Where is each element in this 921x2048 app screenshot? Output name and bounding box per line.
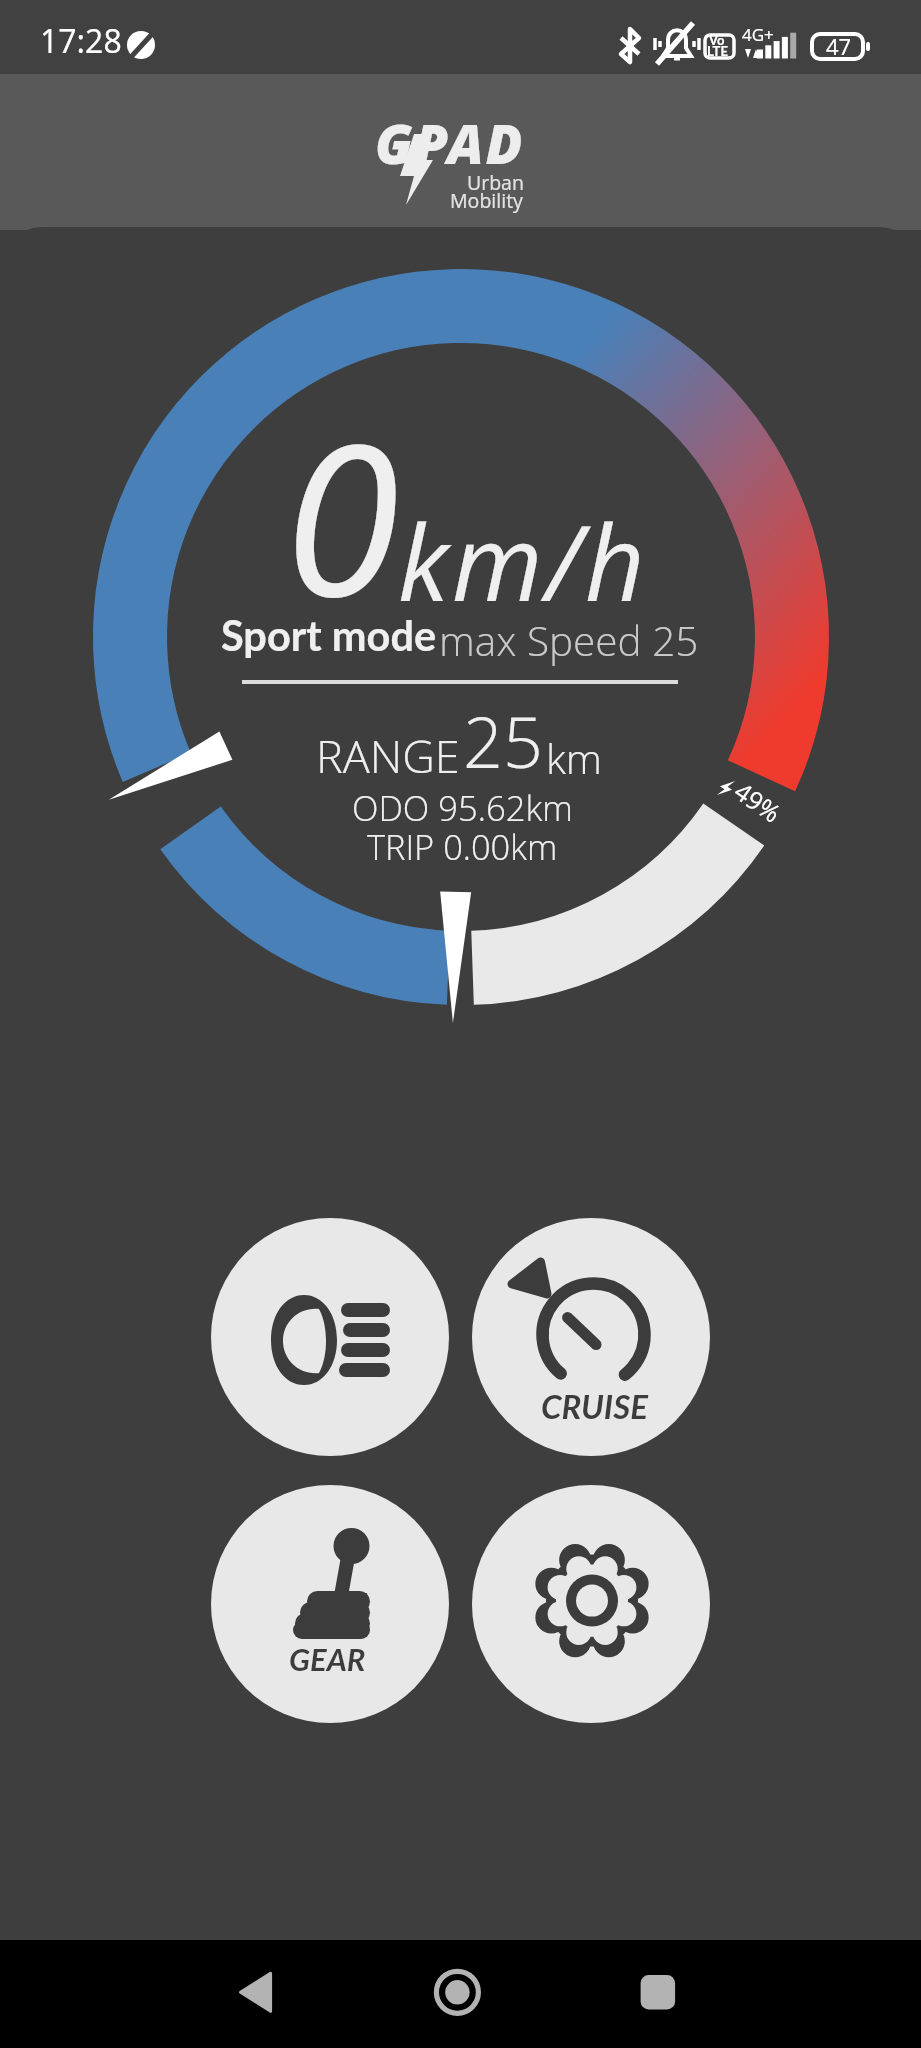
staticText: 25 (463, 693, 543, 788)
button[interactable]: Cruise control (472, 1218, 710, 1456)
staticText: RANGE (316, 725, 460, 786)
staticText: Vo (709, 32, 725, 48)
staticText: TRIP 0.00km (367, 823, 558, 870)
staticText: Mobility (450, 187, 523, 214)
staticText: CRUISE (541, 1386, 648, 1426)
button[interactable]: Settings (472, 1485, 710, 1723)
staticText: GPAD (375, 106, 525, 180)
staticText: 0 (284, 373, 400, 658)
staticText: Sport mode (221, 610, 437, 660)
staticText: 4G+ (742, 23, 774, 46)
staticText: Urban (467, 169, 524, 196)
staticText: 17:28 (40, 19, 122, 63)
staticText: km/h (398, 490, 648, 632)
staticText: 47 (826, 31, 852, 61)
staticText: max Speed 25 (439, 613, 699, 668)
staticText: GEAR (289, 1640, 366, 1677)
button[interactable]: Headlights (211, 1218, 449, 1456)
staticText: km (546, 730, 603, 786)
button[interactable]: Gear (211, 1485, 449, 1723)
staticText: LTE (707, 43, 728, 59)
staticText: ODO 95.62km (352, 784, 573, 831)
staticText: 49% (728, 774, 789, 830)
